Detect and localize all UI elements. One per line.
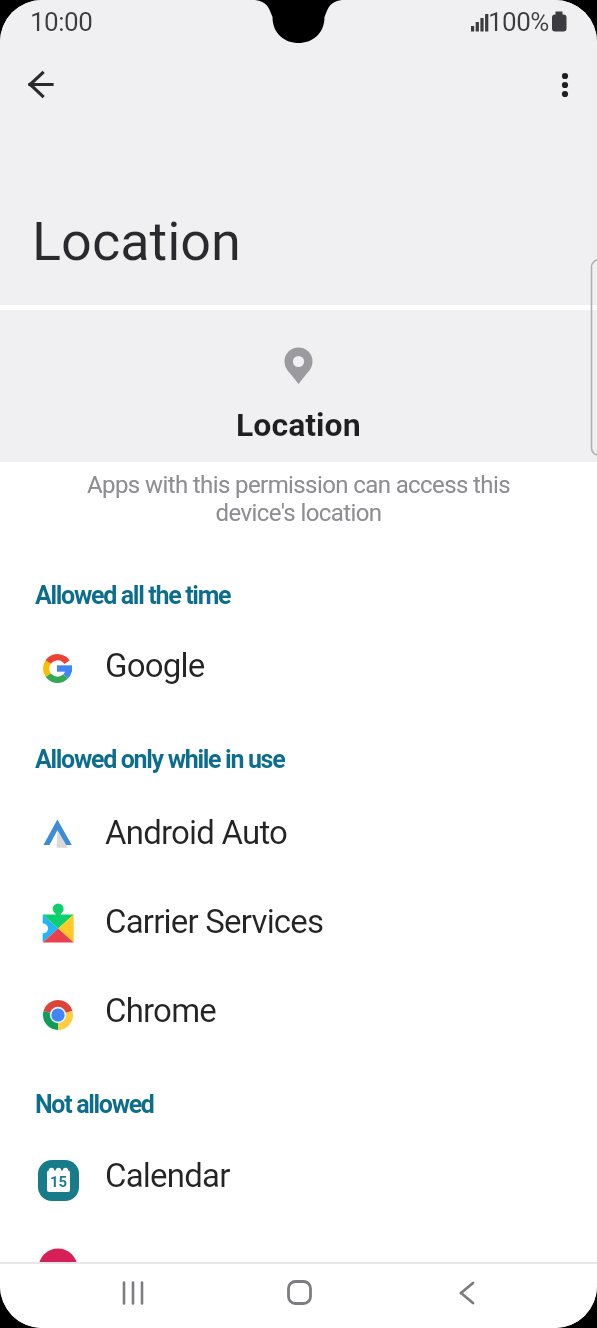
staticText: 15 bbox=[50, 1173, 68, 1191]
button[interactable]: Chrome bbox=[0, 970, 597, 1059]
button[interactable]: Carrier Services bbox=[0, 881, 597, 970]
staticText: Apps with this permission can access thi… bbox=[0, 471, 597, 527]
button[interactable]: 15 bbox=[0, 1135, 597, 1224]
button[interactable] bbox=[0, 1224, 597, 1313]
staticText: Chrome bbox=[105, 991, 216, 1030]
staticText: 100% bbox=[488, 7, 549, 37]
staticText: Location bbox=[32, 210, 241, 273]
staticText: Not allowed bbox=[35, 1090, 154, 1119]
button[interactable] bbox=[542, 62, 588, 108]
staticText: Android Auto bbox=[105, 813, 288, 852]
button[interactable] bbox=[105, 1277, 169, 1315]
button[interactable] bbox=[17, 61, 64, 108]
staticText: Google bbox=[105, 646, 205, 685]
button[interactable] bbox=[266, 1277, 330, 1315]
staticText: 10:00 bbox=[30, 7, 93, 37]
staticText: Allowed all the time bbox=[35, 581, 231, 610]
staticText: Location bbox=[236, 406, 361, 444]
button[interactable]: Android Auto bbox=[0, 792, 597, 881]
staticText: Allowed only while in use bbox=[35, 745, 285, 774]
staticText: Carrier Services bbox=[105, 902, 324, 941]
staticText: Calendar bbox=[105, 1156, 230, 1195]
button[interactable]: Google bbox=[0, 625, 597, 714]
button[interactable] bbox=[432, 1277, 496, 1315]
